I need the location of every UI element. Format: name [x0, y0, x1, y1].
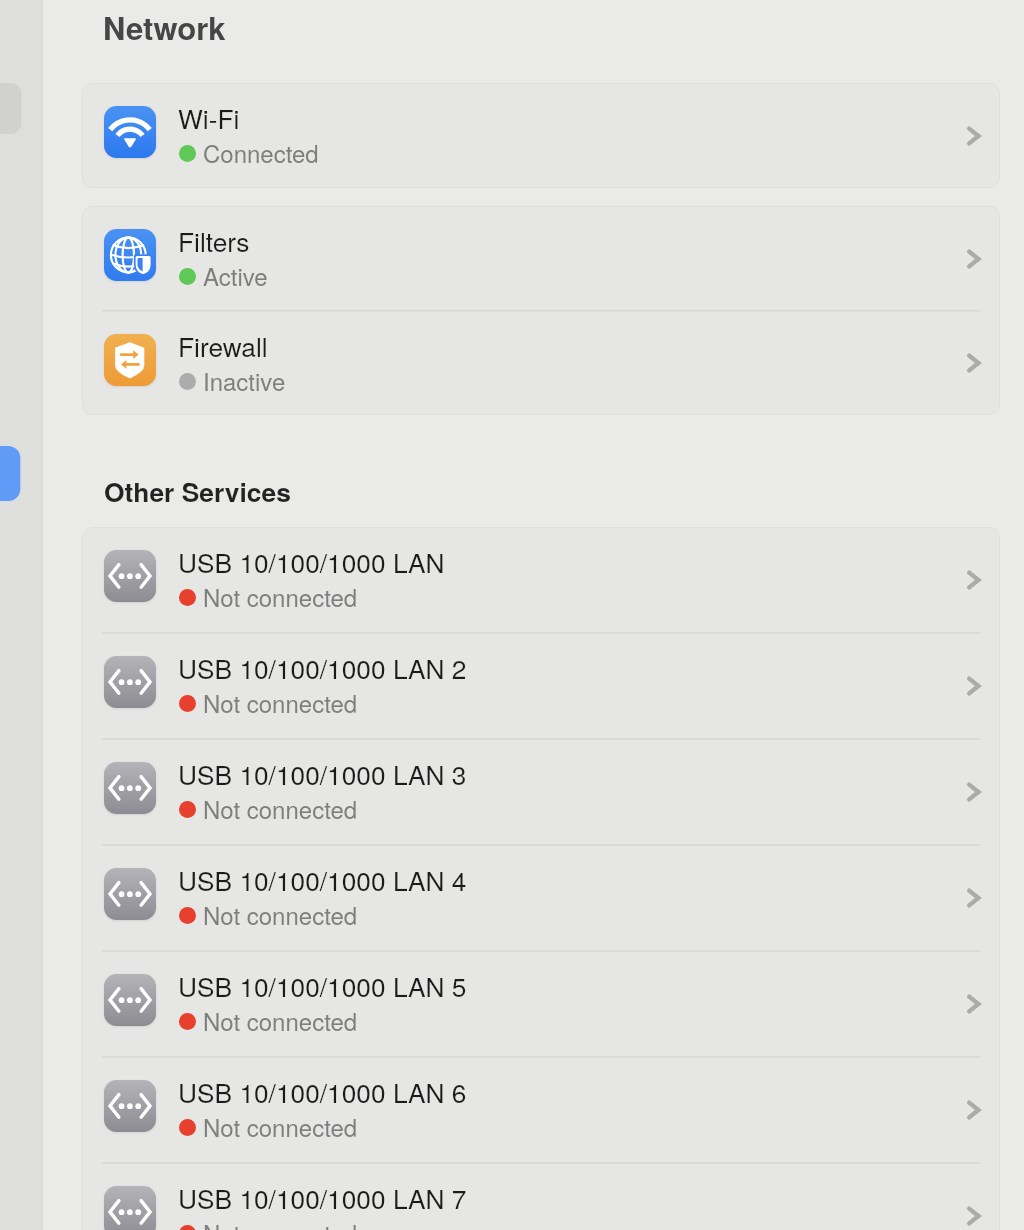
button[interactable]: USB 10/100/1000 LAN — [82, 527, 1000, 633]
other: Open Firewall — [943, 339, 991, 387]
staticText: Not connected — [203, 579, 358, 613]
other: Open USB 10/100/1000 LAN — [943, 556, 991, 604]
staticText: Not connected — [203, 1215, 358, 1230]
button[interactable]: USB 10/100/1000 LAN 3 — [82, 739, 1000, 845]
staticText: USB 10/100/1000 LAN 3 — [178, 755, 467, 793]
staticText: Network — [103, 5, 226, 49]
staticText: Not connected — [203, 1109, 358, 1143]
other: Open USB 10/100/1000 LAN 3 — [943, 768, 991, 816]
staticText: USB 10/100/1000 LAN 7 — [178, 1179, 467, 1217]
button[interactable]: Wi-Fi — [82, 83, 1000, 188]
staticText: Not connected — [203, 1003, 358, 1037]
button[interactable]: USB 10/100/1000 LAN 5 — [82, 951, 1000, 1057]
other: Open USB 10/100/1000 LAN 5 — [943, 980, 991, 1028]
other: Open USB 10/100/1000 LAN 2 — [943, 662, 991, 710]
button[interactable]: USB 10/100/1000 LAN 4 — [82, 845, 1000, 951]
staticText: Wi-Fi — [178, 99, 240, 137]
other: Open USB 10/100/1000 LAN 6 — [943, 1086, 991, 1134]
other: Open Filters — [943, 235, 991, 283]
staticText: Firewall — [178, 327, 268, 365]
staticText: Filters — [178, 222, 250, 260]
staticText: USB 10/100/1000 LAN 2 — [178, 649, 467, 687]
staticText: USB 10/100/1000 LAN 4 — [178, 861, 467, 899]
staticText: USB 10/100/1000 LAN 6 — [178, 1073, 467, 1111]
button[interactable]: Firewall — [82, 311, 1000, 415]
staticText: USB 10/100/1000 LAN 5 — [178, 967, 467, 1005]
staticText: Connected — [203, 135, 319, 169]
other: Open USB 10/100/1000 LAN 4 — [943, 874, 991, 922]
staticText: Not connected — [203, 791, 358, 825]
staticText: USB 10/100/1000 LAN — [178, 543, 445, 581]
staticText: Active — [203, 258, 268, 292]
other: Open USB 10/100/1000 LAN 7 — [943, 1192, 991, 1230]
button[interactable]: USB 10/100/1000 LAN 2 — [82, 633, 1000, 739]
staticText: Inactive — [203, 363, 286, 397]
button[interactable]: Filters — [82, 206, 1000, 311]
staticText: Other Services — [104, 472, 291, 510]
staticText: Not connected — [203, 685, 358, 719]
button[interactable]: USB 10/100/1000 LAN 7 — [82, 1163, 1000, 1230]
other: Open Wi-Fi — [943, 112, 991, 160]
staticText: Not connected — [203, 897, 358, 931]
button[interactable]: USB 10/100/1000 LAN 6 — [82, 1057, 1000, 1163]
